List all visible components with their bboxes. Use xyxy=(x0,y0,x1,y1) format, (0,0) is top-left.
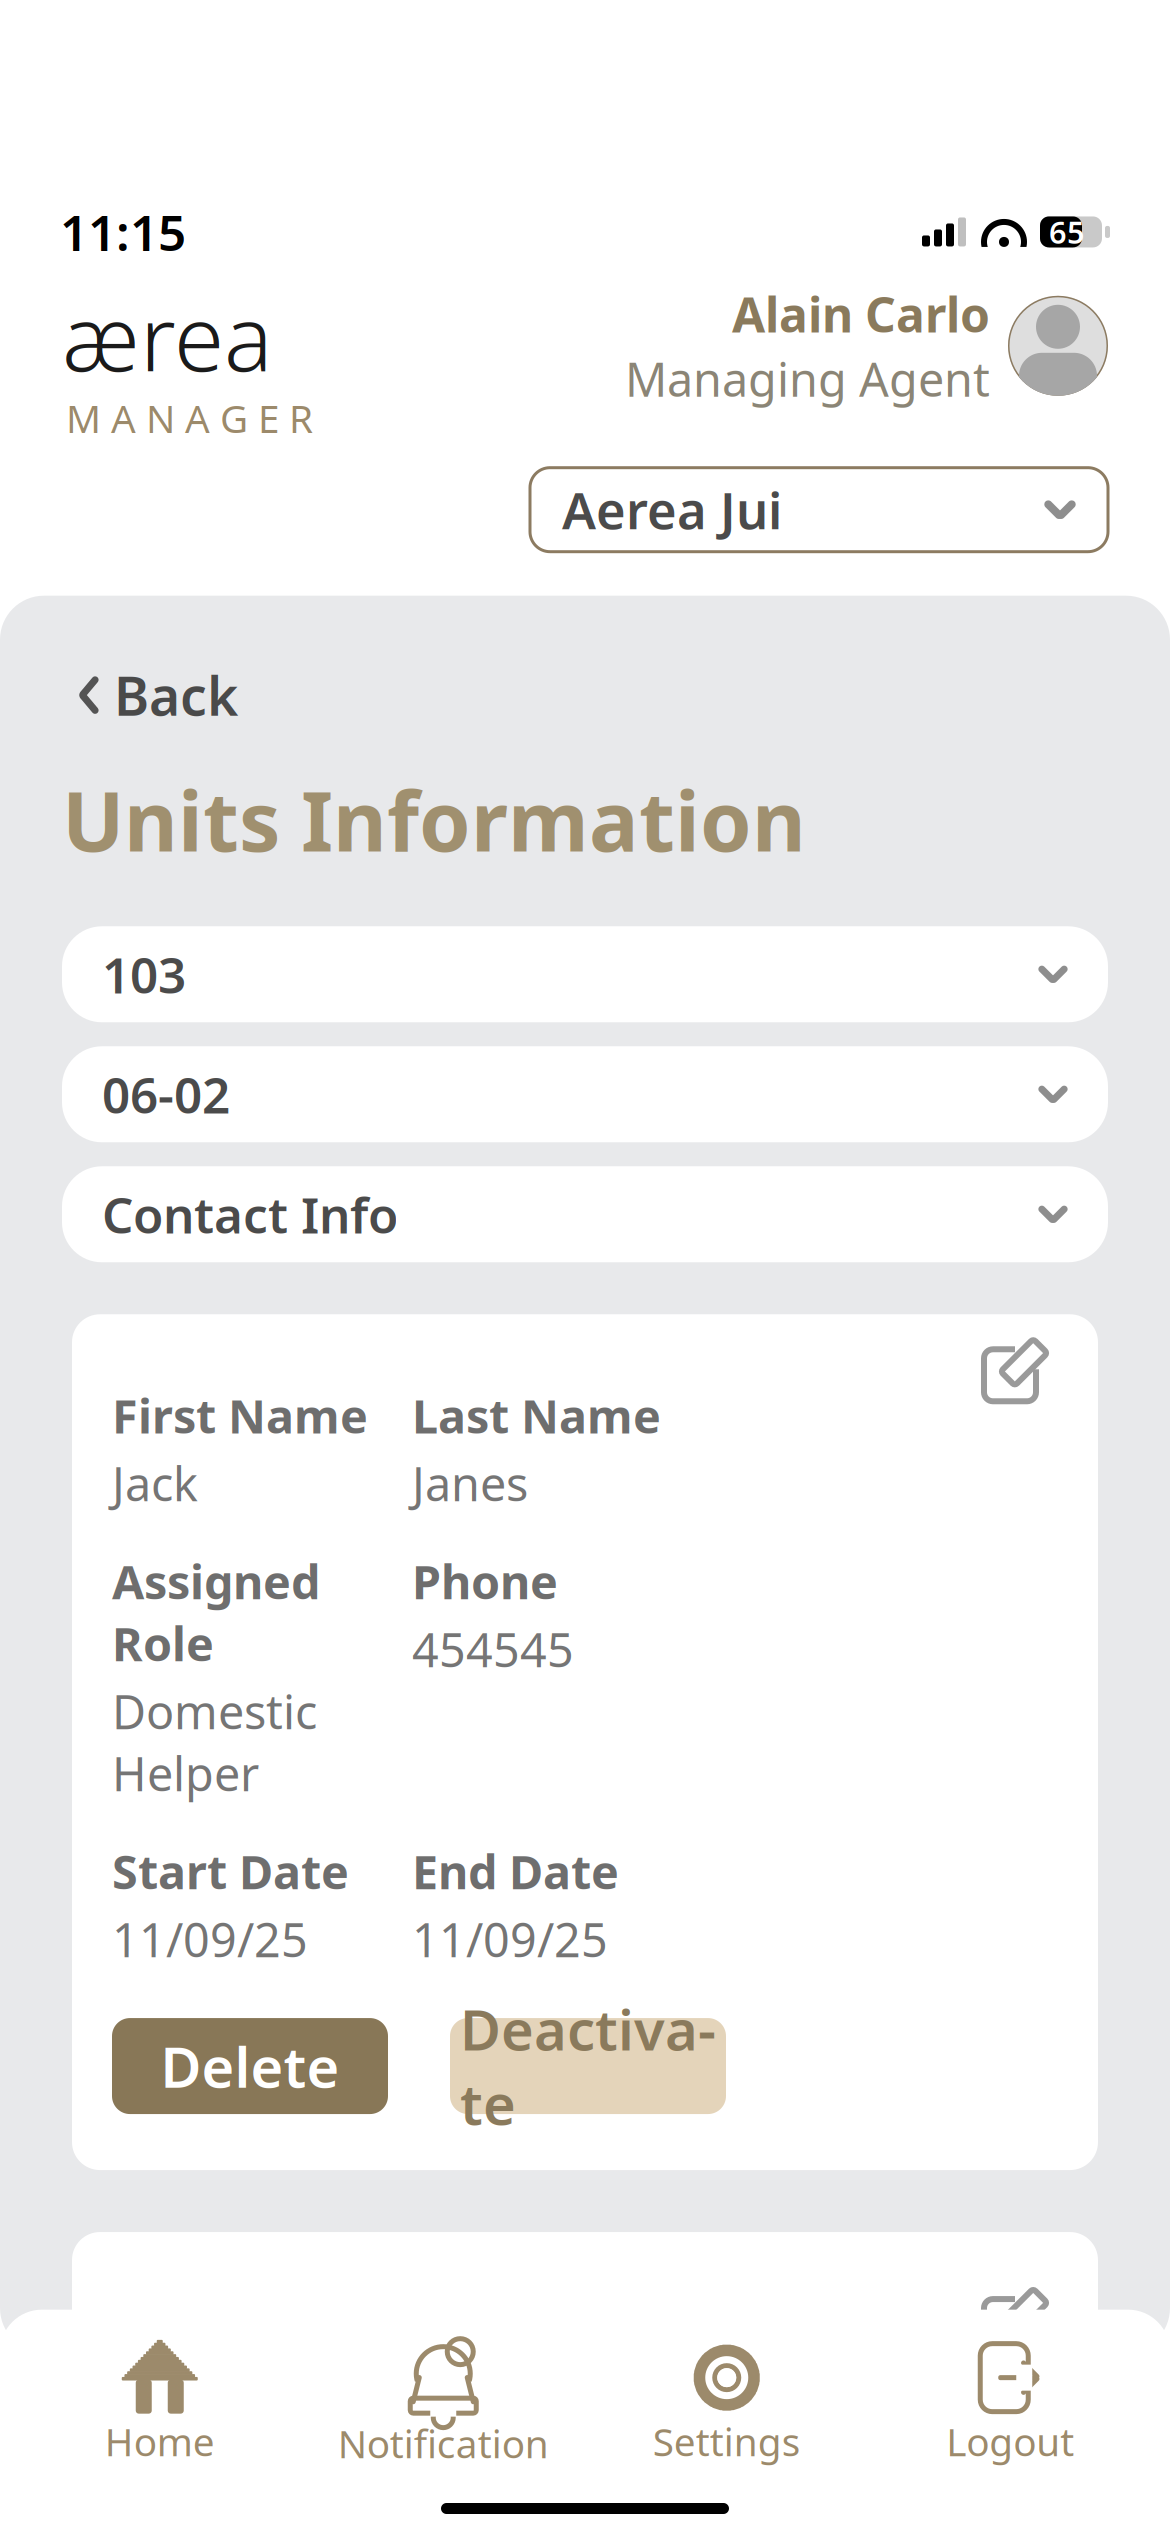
staticText: Assigned Role xyxy=(112,1550,320,1674)
staticText: Logout xyxy=(946,2416,1074,2467)
button[interactable]: 103 xyxy=(62,926,1108,1022)
staticText: 65 xyxy=(1049,212,1085,252)
button[interactable]: Profile xyxy=(1008,296,1108,396)
staticText: M A N A G E R xyxy=(66,392,313,444)
button[interactable]: Settings xyxy=(585,2334,868,2475)
staticText: Back xyxy=(114,660,238,730)
staticText: 11/09/25 xyxy=(112,1908,308,1970)
staticText: Units Information xyxy=(62,764,806,874)
button[interactable]: Notification xyxy=(301,2332,585,2477)
staticText: Deactivate xyxy=(460,1992,716,2140)
staticText: Janes xyxy=(412,1452,528,1514)
staticText: Notification xyxy=(338,2418,549,2469)
button[interactable]: Delete xyxy=(112,2018,388,2114)
staticText: Last Name xyxy=(412,1384,661,1446)
staticText: Aerea Jui xyxy=(562,476,782,543)
button[interactable]: Logout xyxy=(868,2334,1152,2475)
staticText: 11/09/25 xyxy=(412,1908,608,1970)
staticText: First Name xyxy=(112,1384,368,1446)
staticText: 11:15 xyxy=(60,199,186,265)
staticText: 06-02 xyxy=(102,1061,230,1127)
button[interactable]: Aerea Jui xyxy=(530,468,1108,552)
button[interactable]: Deactivate xyxy=(450,2018,726,2114)
button[interactable]: Edit xyxy=(982,1338,1046,1402)
staticText: 103 xyxy=(102,941,186,1007)
staticText: Settings xyxy=(653,2416,801,2467)
button[interactable]: 06-02 xyxy=(62,1046,1108,1142)
staticText: Managing Agent xyxy=(625,348,990,410)
staticText: End Date xyxy=(412,1840,619,1902)
staticText: Phone xyxy=(412,1550,558,1612)
staticText: Alain Carlo xyxy=(732,282,990,346)
staticText: Contact Info xyxy=(102,1181,398,1247)
staticText: 454545 xyxy=(412,1618,574,1680)
staticText: Jack xyxy=(112,1452,198,1514)
staticText: Domestic Helper xyxy=(112,1680,317,1804)
staticText: Start Date xyxy=(112,1840,349,1902)
staticText: Delete xyxy=(160,2029,339,2103)
button[interactable]: Home xyxy=(18,2334,301,2475)
button[interactable]: Back xyxy=(78,654,238,736)
button[interactable]: Contact Info xyxy=(62,1166,1108,1262)
staticText: Home xyxy=(105,2416,215,2467)
staticText: ærea xyxy=(62,276,273,396)
